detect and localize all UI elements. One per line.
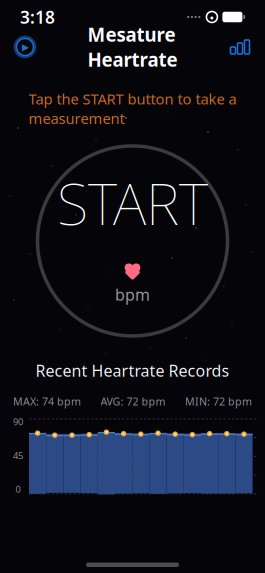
staticText: 90 xyxy=(13,415,23,428)
staticText: START xyxy=(57,165,208,241)
button[interactable]: Statistics xyxy=(223,32,257,62)
staticText: 45 xyxy=(13,449,23,462)
staticText: Tap the START button to take a measureme… xyxy=(28,89,236,128)
button[interactable]: START xyxy=(32,141,232,341)
staticText: MAX: 74 bpm xyxy=(13,394,81,408)
staticText: 3:18 xyxy=(20,5,55,28)
staticText: Recent Heartrate Records xyxy=(35,360,229,381)
staticText: AVG: 72 bpm xyxy=(100,394,165,408)
staticText: Mesature Heartrate xyxy=(87,22,177,72)
button[interactable]: Start timer xyxy=(8,32,42,62)
staticText: ▶ xyxy=(22,42,29,52)
staticText: 0 xyxy=(15,483,20,495)
staticText: MIN: 72 bpm xyxy=(185,394,252,408)
staticText: bpm xyxy=(115,284,150,305)
